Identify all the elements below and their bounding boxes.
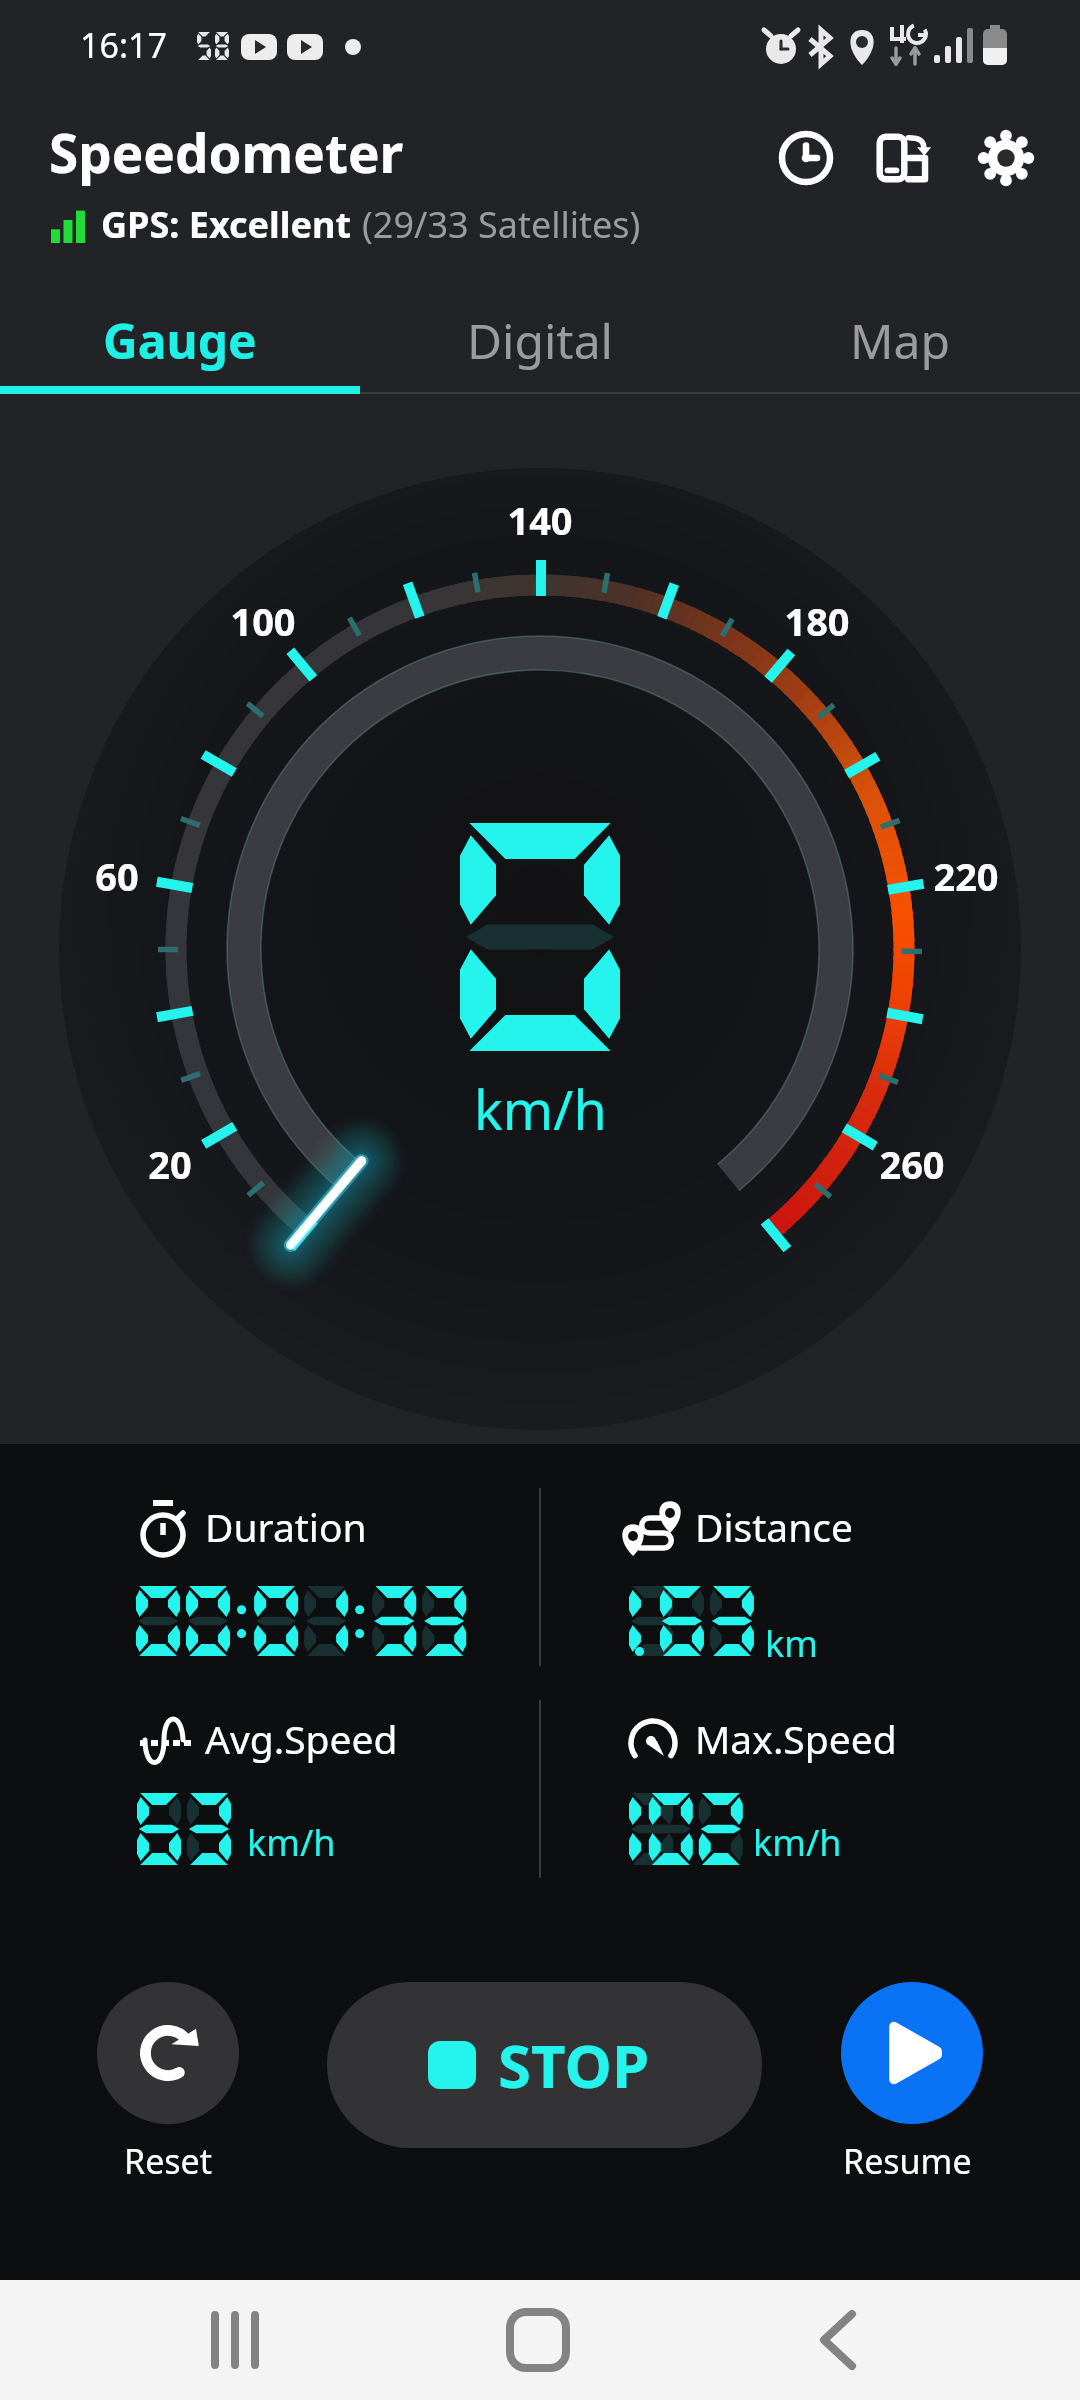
- button[interactable]: Map: [720, 286, 1080, 394]
- staticText: Distance: [695, 1500, 853, 1553]
- staticText: Avg.Speed: [205, 1712, 398, 1765]
- staticText: (29/33 Satellites): [362, 200, 641, 249]
- button[interactable]: STOP: [327, 1982, 762, 2148]
- staticText: Duration: [205, 1500, 367, 1553]
- staticText: km/h: [247, 1818, 336, 1867]
- button[interactable]: Gauge: [0, 286, 360, 394]
- staticText: 16:17: [80, 22, 167, 68]
- button[interactable]: History: [756, 108, 856, 208]
- button[interactable]: Resume: [841, 1982, 983, 2124]
- staticText: STOP: [498, 2024, 650, 2106]
- button[interactable]: Reset: [97, 1982, 239, 2124]
- button[interactable]: Digital: [360, 286, 720, 394]
- staticText: km: [765, 1619, 818, 1668]
- button[interactable]: Settings: [956, 108, 1056, 208]
- staticText: 220: [891, 850, 1041, 902]
- staticText: Map: [850, 308, 950, 373]
- button[interactable]: Cast to device: [856, 108, 956, 208]
- staticText: 60: [67, 850, 167, 902]
- staticText: GPS: Excellent: [101, 200, 352, 249]
- staticText: 20: [120, 1138, 220, 1190]
- staticText: 180: [742, 595, 892, 647]
- staticText: Speedometer: [49, 116, 404, 188]
- staticText: 260: [837, 1138, 987, 1190]
- staticText: Digital: [467, 308, 613, 373]
- staticText: Gauge: [103, 308, 257, 373]
- staticText: Max.Speed: [695, 1712, 897, 1765]
- staticText: Reset: [124, 2138, 213, 2184]
- staticText: km/h: [474, 1072, 607, 1146]
- staticText: 140: [465, 494, 615, 546]
- staticText: 100: [188, 595, 338, 647]
- staticText: Resume: [843, 2138, 972, 2184]
- staticText: km/h: [753, 1818, 842, 1867]
